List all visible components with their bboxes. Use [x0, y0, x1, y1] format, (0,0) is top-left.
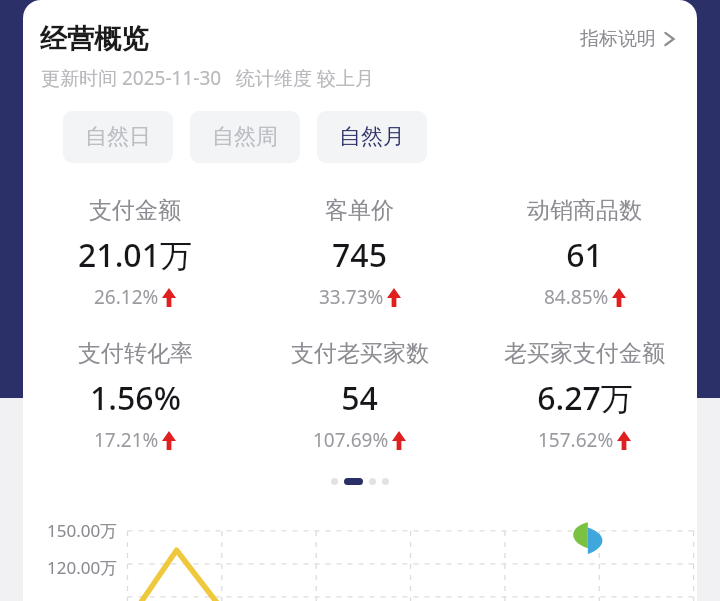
- staticText: 自然月: [339, 123, 405, 151]
- staticText: 支付转化率: [78, 339, 193, 368]
- staticText: 客单价: [325, 196, 394, 225]
- staticText: 21.01万: [78, 233, 192, 277]
- other: Increase: [617, 431, 631, 450]
- staticText: 107.69%: [313, 427, 389, 453]
- staticText: 61: [566, 233, 603, 277]
- button[interactable]: 自然月: [317, 111, 427, 163]
- staticText: 动销商品数: [527, 196, 642, 225]
- staticText: 745: [332, 233, 387, 277]
- button[interactable]: 自然日: [63, 111, 173, 163]
- staticText: 老买家支付金额: [504, 339, 665, 368]
- other: Increase: [392, 431, 406, 450]
- staticText: 26.12%: [94, 284, 159, 310]
- staticText: 120.00万: [47, 556, 118, 579]
- other: Increase: [387, 288, 401, 307]
- staticText: 支付金额: [89, 196, 181, 225]
- other: Increase: [162, 431, 176, 450]
- staticText: 自然周: [212, 123, 278, 151]
- button[interactable]: 自然周: [190, 111, 300, 163]
- staticText: 54: [341, 376, 378, 420]
- staticText: 指标说明: [580, 27, 656, 51]
- other: Increase: [162, 288, 176, 307]
- staticText: 33.73%: [319, 284, 384, 310]
- staticText: 经营概览: [40, 22, 148, 56]
- other: Increase: [612, 288, 626, 307]
- staticText: 1.56%: [90, 376, 181, 420]
- button[interactable]: 指标说明: [576, 23, 680, 55]
- staticText: 更新时间 2025-11-30 统计维度 较上月: [41, 65, 374, 91]
- staticText: 17.21%: [94, 427, 159, 453]
- staticText: 6.27万: [537, 376, 633, 420]
- staticText: 84.85%: [544, 284, 609, 310]
- staticText: 支付老买家数: [291, 339, 429, 368]
- staticText: 157.62%: [538, 427, 614, 453]
- staticText: 150.00万: [47, 519, 118, 542]
- staticText: 自然日: [85, 123, 151, 151]
